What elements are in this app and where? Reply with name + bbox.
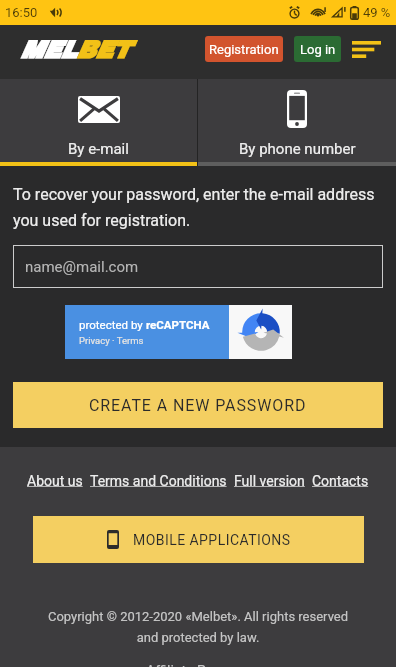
button[interactable]: By e-mail xyxy=(0,79,197,166)
staticText: reCAPTCHA xyxy=(146,318,210,331)
button[interactable]: name@mail.com xyxy=(13,245,383,288)
staticText: Registration xyxy=(209,42,279,57)
button[interactable]: Log in xyxy=(294,36,341,62)
staticText: protected by xyxy=(79,318,146,331)
button[interactable]: About us xyxy=(27,473,83,489)
button[interactable]: Contacts xyxy=(312,473,369,489)
button[interactable]: MOBILE APPLICATIONS xyxy=(33,516,364,563)
button[interactable]: Menu xyxy=(351,34,381,64)
staticText: Terms and Conditions xyxy=(90,473,227,489)
staticText: Affiliate Program xyxy=(146,663,251,667)
staticText: Contacts xyxy=(312,473,369,489)
button[interactable]: By phone number xyxy=(198,79,396,166)
button[interactable]: Registration xyxy=(205,36,283,62)
staticText: MEL xyxy=(20,37,76,63)
button[interactable]: protected by xyxy=(65,305,292,359)
staticText: Log in xyxy=(300,42,336,57)
staticText: BET xyxy=(76,37,130,63)
staticText: By phone number xyxy=(239,140,356,158)
button[interactable]: Affiliate Program xyxy=(146,663,251,667)
button[interactable]: Terms and Conditions xyxy=(90,473,227,489)
staticText: 49 % xyxy=(363,5,391,20)
staticText: MOBILE APPLICATIONS xyxy=(133,532,291,548)
staticText: CREATE A NEW PASSWORD xyxy=(89,396,307,415)
staticText: Copyright © 2012-2020 «Melbet». All righ… xyxy=(0,609,396,645)
staticText: To recover your password, enter the e-ma… xyxy=(13,185,383,229)
staticText: Privacy · Terms xyxy=(79,335,144,346)
button[interactable]: Full version xyxy=(234,473,305,489)
staticText: By e-mail xyxy=(68,140,129,158)
staticText: Full version xyxy=(234,473,305,489)
staticText: name@mail.com xyxy=(25,258,139,276)
button[interactable]: MEL xyxy=(20,37,130,63)
staticText: About us xyxy=(27,473,83,489)
staticText: 16:50 xyxy=(5,5,38,20)
button[interactable]: CREATE A NEW PASSWORD xyxy=(13,382,383,428)
